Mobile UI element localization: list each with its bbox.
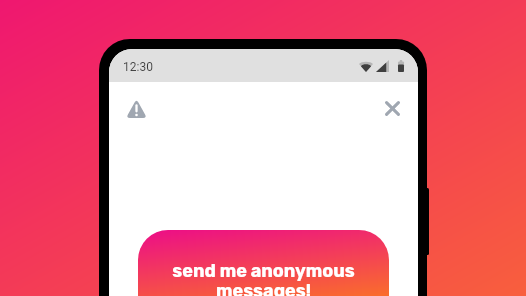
- staticText: send me anonymous messages!: [150, 260, 377, 296]
- button[interactable]: Close: [375, 91, 409, 125]
- button[interactable]: send me anonymous messages!: [138, 230, 389, 296]
- button[interactable]: Warning: [119, 91, 153, 125]
- staticText: 12:30: [123, 60, 153, 74]
